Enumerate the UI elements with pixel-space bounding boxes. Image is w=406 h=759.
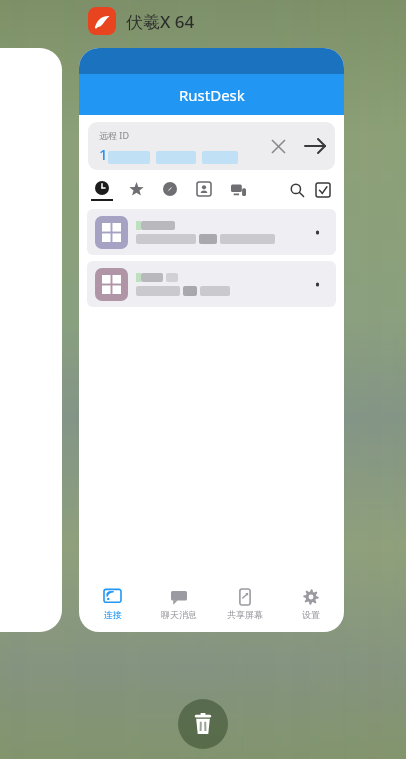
staticText: 设置 [302, 609, 320, 620]
staticText: 共享屏幕 [227, 609, 263, 620]
button[interactable] [187, 177, 221, 203]
button[interactable]: Search [284, 177, 310, 203]
staticText: 伏羲X 64 [126, 10, 195, 33]
button[interactable]: Connect [295, 126, 335, 166]
staticText: 聊天消息 [161, 609, 197, 620]
staticText: 远程 ID [99, 129, 129, 141]
button[interactable]: Clear all [178, 699, 228, 749]
button[interactable] [221, 177, 255, 203]
button[interactable]: More options [87, 209, 336, 255]
staticText: 连接 [104, 609, 122, 620]
button[interactable]: 聊天消息 [146, 578, 212, 628]
staticText: RustDesk [179, 85, 245, 105]
button[interactable]: 连接 [79, 578, 146, 628]
button[interactable] [153, 177, 187, 203]
button[interactable]: RustDesk [79, 48, 344, 632]
button[interactable]: 远程 ID [88, 122, 335, 170]
button[interactable]: More options [302, 269, 332, 299]
button[interactable]: Select [310, 177, 336, 203]
button[interactable]: More options [87, 261, 336, 307]
button[interactable]: More options [302, 217, 332, 247]
button[interactable]: 设置 [278, 578, 344, 628]
button[interactable]: 共享屏幕 [212, 578, 278, 628]
button[interactable] [119, 177, 153, 203]
button[interactable]: Clear [261, 129, 295, 163]
button[interactable] [0, 48, 62, 632]
button[interactable] [85, 177, 119, 203]
staticText: 1 [99, 144, 108, 164]
